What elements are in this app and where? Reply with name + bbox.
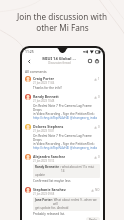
staticText: Reply xyxy=(89,218,97,220)
staticText: 21 Jan 2023 10:48 xyxy=(33,99,55,103)
staticText: Stephanie Sanchez xyxy=(33,187,66,192)
staticText: On Redmi Note 7 Pro Camera Lag Frame Dro… xyxy=(33,134,100,142)
staticText: other Mi Fans xyxy=(36,22,89,33)
button[interactable]: Back xyxy=(25,57,33,65)
staticText: 21 Jan 2023 10:31 xyxy=(33,129,55,133)
staticText: in Video Recording - Sign the Petition!(… xyxy=(33,142,95,146)
staticText: Dolores Stephens xyxy=(33,124,64,129)
staticText: What about redmi 9.. when we will xyxy=(53,198,98,206)
staticText: Discussion thread xyxy=(48,61,71,65)
staticText: Craig Porter xyxy=(33,76,55,81)
staticText: 1 xyxy=(98,77,100,81)
button[interactable]: Stephanie Sanchez xyxy=(22,185,103,220)
staticText: update xyxy=(35,173,46,177)
button[interactable]: Share xyxy=(93,57,100,64)
staticText: Join the discussion with xyxy=(17,11,107,22)
button[interactable]: Reply xyxy=(86,217,100,220)
staticText: 0 xyxy=(98,155,100,159)
staticText: On Redmi Note 7 Pro Camera Lag Frame Dro… xyxy=(33,104,100,112)
staticText: 11:25 xyxy=(25,49,34,54)
staticText: 0 xyxy=(98,125,100,129)
button[interactable]: Alejandro Sanchez xyxy=(22,152,103,185)
button[interactable]: Craig Porter xyxy=(22,74,103,92)
staticText: Jane Porter: xyxy=(35,198,53,202)
staticText: Alejandro Sanchez xyxy=(33,154,65,159)
staticText: NO xyxy=(95,188,100,192)
staticText: what about mi11x miui 14 xyxy=(61,165,98,173)
staticText: Randy Bennette : xyxy=(35,165,61,169)
staticText: All comments xyxy=(25,69,47,73)
button[interactable]: Randy Bennett xyxy=(22,92,103,122)
staticText: Randy Bennett xyxy=(33,94,59,99)
button[interactable]: Save xyxy=(86,57,93,64)
staticText: in Video Recording - Sign the Petition!(… xyxy=(33,112,95,116)
staticText: 21 Jan 2023 10:12 xyxy=(33,159,55,163)
button[interactable]: MIUI 14 Global ... xyxy=(42,56,76,65)
staticText: 21 Jan 2023 09:58 xyxy=(33,192,55,196)
staticText: Probably released list. xyxy=(33,212,65,216)
button[interactable]: Dolores Stephens xyxy=(22,122,103,152)
staticText: MIUI 14 Global ... xyxy=(42,56,76,61)
staticText: http://chng.it/KqcN4vH4) @changeorg_indi… xyxy=(33,116,98,120)
staticText: http://chng.it/KqcN4vH4) @changeorg_indi… xyxy=(33,146,98,150)
staticText: Confirmed list maybe less xyxy=(33,179,71,183)
staticText: get update for.. Android xyxy=(35,206,69,210)
staticText: 21 Jan 2023 11:04 xyxy=(33,81,55,85)
staticText: Thanks for the info!! xyxy=(33,86,63,90)
staticText: 0 xyxy=(98,95,100,99)
